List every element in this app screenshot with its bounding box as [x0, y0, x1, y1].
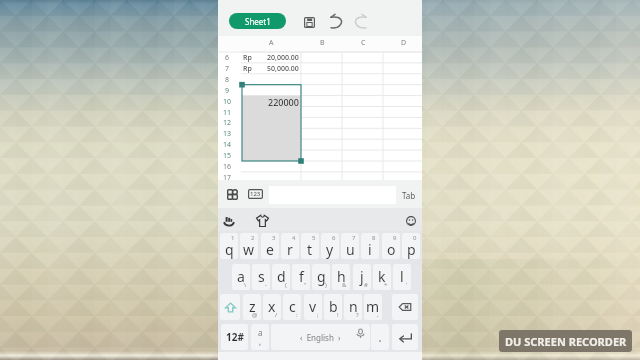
staticText: , [377, 311, 379, 319]
button[interactable]: Space, English [271, 324, 370, 350]
staticText: d [277, 267, 286, 286]
staticText: 8 [225, 75, 230, 85]
button[interactable]: * [373, 264, 391, 290]
staticText: v [309, 297, 317, 316]
button[interactable]: Cell functions [222, 184, 242, 204]
button[interactable]: ? [344, 294, 362, 320]
staticText: f [299, 267, 304, 286]
button[interactable]: a [251, 324, 269, 350]
staticText: 220000 [268, 96, 299, 107]
staticText: 3 [272, 234, 276, 242]
staticText: j [360, 267, 364, 286]
button[interactable]: Save [300, 13, 318, 31]
staticText: g [317, 267, 326, 286]
button[interactable]: " [292, 264, 310, 290]
staticText: Rp [243, 64, 252, 74]
staticText: - [265, 281, 267, 289]
staticText: 13 [223, 129, 232, 139]
staticText: 16 [223, 162, 232, 172]
staticText: 9 [393, 234, 397, 242]
staticText: 123 [250, 190, 261, 198]
button[interactable]: Handwriting [220, 212, 238, 230]
staticText: Tab [402, 190, 416, 201]
button[interactable]: Voice input [354, 327, 366, 339]
staticText: o [387, 240, 396, 259]
staticText: DU SCREEN RECORDER [505, 334, 627, 349]
button[interactable]: Number format [245, 184, 265, 204]
staticText: Rp [243, 53, 252, 63]
staticText: , [259, 336, 262, 347]
button[interactable]: DU Screen Recorder watermark [499, 330, 632, 352]
button[interactable]: . [371, 324, 389, 350]
button[interactable]: 4 [281, 233, 299, 259]
button[interactable]: Symbols [221, 324, 248, 350]
staticText: q [225, 240, 234, 259]
staticText: 20,000.00 [267, 53, 299, 63]
button[interactable]: / [263, 294, 281, 320]
staticText: 10 [223, 97, 232, 107]
staticText: / [275, 311, 278, 319]
button[interactable]: 0 [402, 233, 420, 259]
staticText: 12 [223, 118, 232, 128]
button[interactable]: ' [393, 264, 411, 290]
staticText: ? [356, 311, 359, 319]
staticText: 11 [223, 108, 232, 118]
staticText: * [384, 281, 388, 289]
staticText: 6 [225, 53, 230, 63]
staticText: x [268, 297, 276, 316]
button[interactable]: 7 [341, 233, 359, 259]
button[interactable]: Tab [398, 186, 420, 204]
staticText: l [400, 267, 404, 286]
button[interactable]: 1 [220, 233, 238, 259]
button[interactable]: ( [272, 264, 290, 290]
button[interactable]: \ [232, 264, 250, 290]
staticText: b [329, 297, 338, 316]
button[interactable]: ; [304, 294, 322, 320]
button[interactable]: 9 [382, 233, 400, 259]
staticText: e [266, 240, 274, 259]
button[interactable]: Backspace [392, 294, 418, 320]
button[interactable]: 3 [261, 233, 279, 259]
staticText: m [366, 297, 380, 316]
staticText: ) [325, 281, 327, 289]
button[interactable]: ) [312, 264, 330, 290]
staticText: @ [252, 311, 258, 319]
button[interactable]: ! [324, 294, 342, 320]
button[interactable]: 5 [301, 233, 319, 259]
staticText: p [407, 240, 416, 259]
button[interactable]: Redo [350, 11, 370, 31]
staticText: & [342, 281, 347, 289]
button[interactable]: 8 [361, 233, 379, 259]
button[interactable]: : [283, 294, 301, 320]
staticText: 2 [251, 234, 255, 242]
staticText: ! [337, 311, 339, 319]
staticText: 4 [292, 234, 296, 242]
staticText: 17 [223, 173, 232, 183]
staticText: C [361, 38, 366, 48]
button[interactable]: & [332, 264, 350, 290]
staticText: 50,000.00 [267, 64, 299, 74]
staticText: w [243, 240, 255, 259]
staticText: n [349, 297, 358, 316]
staticText: 5 [312, 234, 316, 242]
button[interactable]: Undo [326, 11, 346, 31]
staticText: h [337, 267, 346, 286]
staticText: . [378, 327, 382, 346]
button[interactable]: Keyboard theme [253, 211, 271, 229]
button[interactable]: 2 [240, 233, 258, 259]
staticText: y [326, 240, 334, 259]
staticText: " [304, 281, 307, 289]
button[interactable]: - [252, 264, 270, 290]
staticText: s [258, 267, 265, 286]
button[interactable]: Sheet1 [229, 13, 286, 29]
button[interactable]: 6 [321, 233, 339, 259]
button[interactable]: # [353, 264, 371, 290]
button[interactable]: Shift [220, 294, 240, 320]
button[interactable]: , [364, 294, 382, 320]
staticText: D [401, 38, 407, 48]
button[interactable]: Enter [392, 324, 418, 350]
button[interactable]: @ [243, 294, 261, 320]
staticText: k [378, 267, 386, 286]
button[interactable]: Emoji [402, 212, 420, 230]
